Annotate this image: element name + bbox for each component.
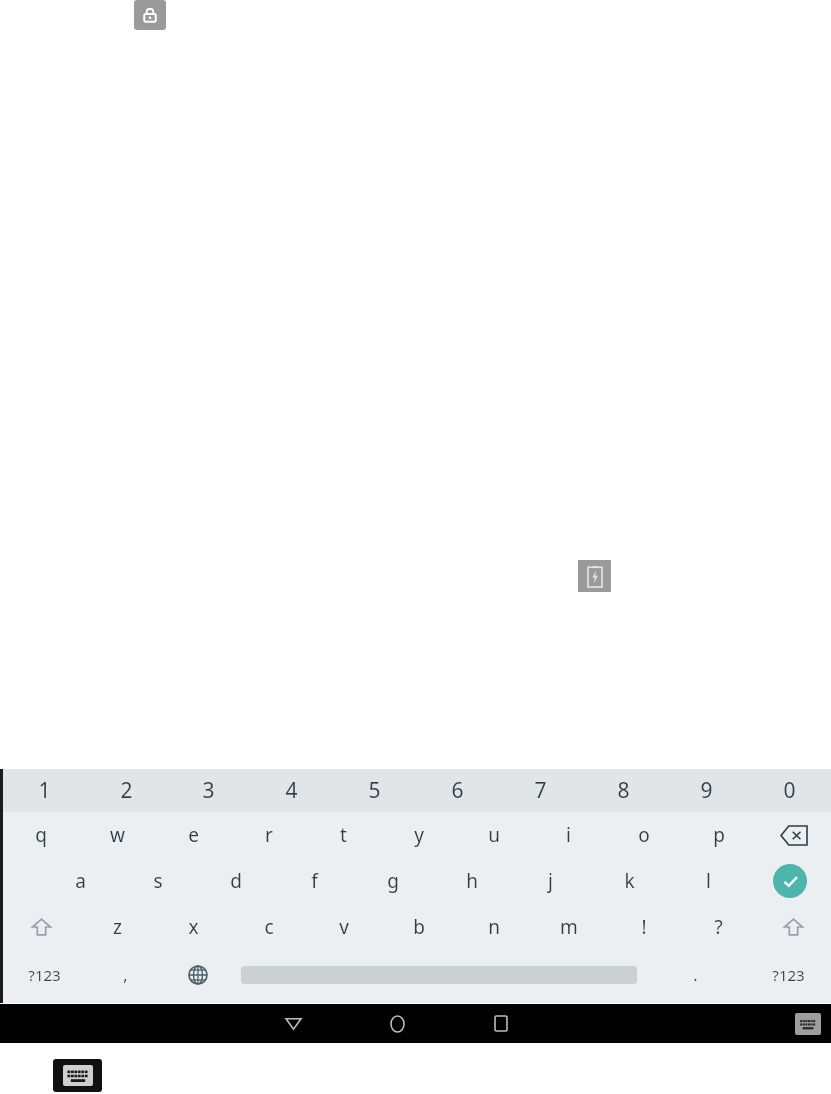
button[interactable]: d bbox=[197, 858, 275, 904]
button[interactable]: ! bbox=[606, 904, 681, 950]
staticText: i bbox=[566, 822, 571, 848]
button[interactable]: ?123 bbox=[745, 950, 831, 1000]
button[interactable]: 8 bbox=[582, 769, 665, 812]
button[interactable]: k bbox=[590, 858, 669, 904]
button[interactable]: q bbox=[3, 812, 79, 858]
button[interactable]: 7 bbox=[499, 769, 582, 812]
staticText: x bbox=[188, 914, 199, 940]
button[interactable]: 3 bbox=[167, 769, 250, 812]
button[interactable]: Keyboard bbox=[53, 1059, 102, 1092]
button[interactable]: Backspace bbox=[756, 812, 831, 858]
button[interactable]: Recents bbox=[473, 1004, 529, 1043]
button[interactable]: x bbox=[155, 904, 231, 950]
staticText: b bbox=[413, 914, 425, 940]
button[interactable]: g bbox=[353, 858, 432, 904]
button[interactable]: Shift bbox=[756, 904, 831, 950]
button[interactable]: Change language bbox=[163, 950, 233, 1000]
staticText: , bbox=[123, 964, 128, 986]
button[interactable] bbox=[241, 950, 637, 1000]
button[interactable]: , bbox=[88, 950, 163, 1000]
staticText: 0 bbox=[783, 776, 796, 805]
button[interactable]: r bbox=[231, 812, 306, 858]
staticText: ? bbox=[714, 914, 723, 940]
staticText: l bbox=[706, 868, 711, 894]
button[interactable]: 6 bbox=[416, 769, 499, 812]
button[interactable]: w bbox=[79, 812, 155, 858]
button[interactable]: z bbox=[79, 904, 155, 950]
staticText: q bbox=[35, 822, 47, 848]
staticText: w bbox=[110, 822, 125, 848]
staticText: ?123 bbox=[28, 965, 61, 985]
button[interactable]: f bbox=[275, 858, 353, 904]
button[interactable]: t bbox=[306, 812, 381, 858]
button[interactable]: Enter bbox=[748, 858, 831, 904]
button[interactable]: h bbox=[432, 858, 511, 904]
staticText: 7 bbox=[534, 776, 547, 805]
button[interactable]: Back bbox=[265, 1004, 321, 1043]
staticText: 1 bbox=[38, 776, 51, 805]
button[interactable]: Battery charging bbox=[578, 560, 611, 592]
staticText: p bbox=[713, 822, 725, 848]
staticText: a bbox=[75, 868, 86, 894]
button[interactable]: l bbox=[669, 858, 748, 904]
button[interactable]: 4 bbox=[250, 769, 333, 812]
button[interactable]: e bbox=[155, 812, 231, 858]
staticText: r bbox=[265, 822, 273, 848]
staticText: 6 bbox=[451, 776, 464, 805]
staticText: ?123 bbox=[772, 965, 805, 985]
button[interactable]: 0 bbox=[748, 769, 831, 812]
staticText: . bbox=[693, 964, 698, 986]
staticText: m bbox=[560, 914, 578, 940]
button[interactable]: v bbox=[306, 904, 381, 950]
staticText: k bbox=[624, 868, 635, 894]
button[interactable]: 5 bbox=[333, 769, 416, 812]
staticText: v bbox=[339, 914, 349, 940]
button[interactable]: 1 bbox=[3, 769, 85, 812]
button[interactable]: Lock bbox=[134, 0, 166, 30]
staticText: 3 bbox=[202, 776, 215, 805]
staticText: s bbox=[153, 868, 163, 894]
staticText: 2 bbox=[120, 776, 133, 805]
staticText: d bbox=[230, 868, 242, 894]
button[interactable]: Shift bbox=[3, 904, 79, 950]
staticText: f bbox=[311, 868, 318, 894]
button[interactable]: j bbox=[511, 858, 590, 904]
button[interactable]: 2 bbox=[85, 769, 167, 812]
staticText: h bbox=[466, 868, 478, 894]
button[interactable]: Home bbox=[369, 1004, 425, 1043]
staticText: j bbox=[548, 868, 553, 894]
staticText: e bbox=[188, 822, 199, 848]
button[interactable]: 9 bbox=[665, 769, 748, 812]
button[interactable]: u bbox=[456, 812, 531, 858]
button[interactable]: Switch keyboard bbox=[795, 1013, 821, 1035]
button[interactable]: y bbox=[381, 812, 456, 858]
button[interactable]: b bbox=[381, 904, 456, 950]
button[interactable]: s bbox=[119, 858, 197, 904]
button[interactable]: i bbox=[531, 812, 606, 858]
button[interactable]: ?123 bbox=[0, 950, 88, 1000]
button[interactable]: ? bbox=[681, 904, 756, 950]
button[interactable]: a bbox=[41, 858, 119, 904]
button[interactable]: n bbox=[456, 904, 531, 950]
button[interactable]: c bbox=[231, 904, 306, 950]
button[interactable]: m bbox=[531, 904, 606, 950]
staticText: 5 bbox=[368, 776, 381, 805]
staticText: 8 bbox=[617, 776, 630, 805]
staticText: o bbox=[638, 822, 650, 848]
staticText: y bbox=[414, 822, 424, 848]
staticText: g bbox=[387, 868, 399, 894]
staticText: ! bbox=[641, 914, 647, 940]
staticText: c bbox=[264, 914, 274, 940]
staticText: n bbox=[488, 914, 500, 940]
staticText: 9 bbox=[700, 776, 713, 805]
button[interactable]: o bbox=[606, 812, 681, 858]
staticText: t bbox=[340, 822, 347, 848]
staticText: z bbox=[113, 914, 122, 940]
button[interactable]: p bbox=[681, 812, 756, 858]
staticText: 4 bbox=[285, 776, 298, 805]
staticText: u bbox=[488, 822, 500, 848]
button[interactable]: . bbox=[645, 950, 745, 1000]
